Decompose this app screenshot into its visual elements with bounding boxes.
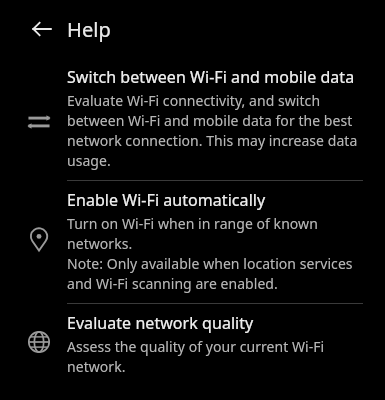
button[interactable]: Back: [20, 7, 64, 51]
staticText: Evaluate network quality: [67, 312, 254, 334]
staticText: Enable Wi-Fi automatically: [67, 189, 266, 211]
button[interactable]: Location: [0, 181, 385, 303]
other: Network quality: [22, 325, 56, 359]
staticText: Evaluate Wi-Fi connectivity, and switch …: [67, 91, 373, 170]
other: Switch between networks: [22, 105, 56, 139]
staticText: Switch between Wi-Fi and mobile data: [67, 66, 355, 88]
staticText: Assess the quality of your current Wi-Fi…: [67, 337, 373, 376]
staticText: Help: [67, 16, 111, 43]
button[interactable]: Network quality: [0, 304, 385, 386]
button[interactable]: Switch between networks: [0, 58, 385, 180]
other: Location: [22, 222, 56, 256]
staticText: Turn on Wi-Fi when in range of known net…: [67, 214, 373, 293]
